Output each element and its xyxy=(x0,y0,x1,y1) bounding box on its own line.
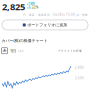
button[interactable]: アナリストの評価 xyxy=(58,49,82,52)
staticText: カバー(株)の株価チャート xyxy=(1,38,47,43)
staticText: 2,825 xyxy=(2,0,25,13)
staticText: +5.22% xyxy=(27,6,38,9)
staticText: ポートフォリオに追加 xyxy=(27,22,67,27)
staticText: 1日 xyxy=(10,48,16,53)
staticText: 円 · 東証 · 免責条項 · 3月28日 15:00 JST · 情報 xyxy=(23,13,88,16)
staticText: アナリストの評価 xyxy=(58,49,82,52)
button[interactable]: Chart range options xyxy=(1,48,7,54)
staticText: ほか xyxy=(18,49,24,52)
staticText: +140 xyxy=(27,2,35,5)
staticText: 2,600 xyxy=(75,76,84,80)
staticText: 2,800 xyxy=(75,66,84,69)
button[interactable]: ポートフォリオに追加 xyxy=(2,20,88,30)
